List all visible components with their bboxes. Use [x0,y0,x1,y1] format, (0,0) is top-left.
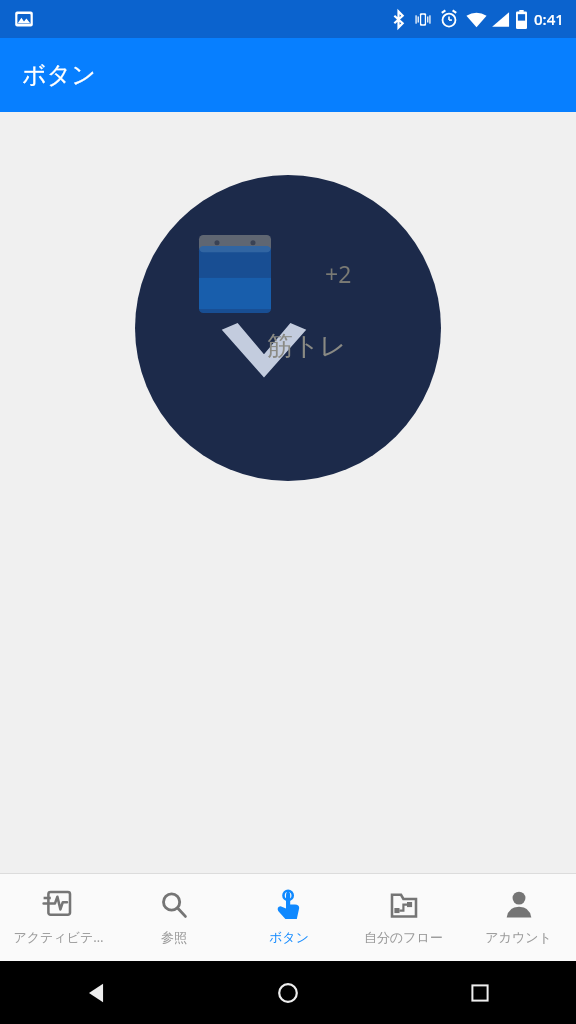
staticText: 自分のフロー [364,929,443,945]
other: Home [277,982,299,1004]
other: Back [85,982,107,1004]
staticText: +2 [325,258,352,289]
other: Recent apps [470,983,490,1003]
button[interactable]: 参照 [116,874,231,961]
button[interactable]: ボタン [231,874,346,961]
staticText: アカウント [485,929,552,945]
button[interactable]: 自分のフロー [346,874,461,961]
staticText: 筋トレ [267,330,347,363]
staticText: ボタン [269,929,309,945]
staticText: 0:41 [534,9,564,29]
staticText: 参照 [161,929,187,945]
staticText: アクティビテ… [13,928,104,946]
button[interactable]: アカウント [461,874,576,961]
button[interactable]: アクティビテ… [0,874,116,961]
button[interactable]: +2 [135,175,441,481]
staticText: ボタン [22,60,96,90]
